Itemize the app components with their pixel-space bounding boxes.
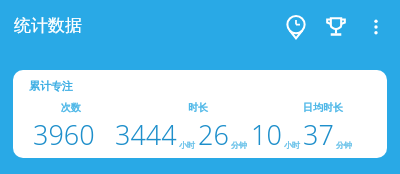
staticText: 3444 <box>115 116 177 153</box>
staticText: 分钟 <box>231 140 247 150</box>
staticText: 10 <box>251 116 282 153</box>
button[interactable]: 累计专注 <box>13 70 387 158</box>
staticText: 分钟 <box>336 140 352 150</box>
staticText: 次数 <box>61 101 81 114</box>
staticText: 时长 <box>188 101 208 114</box>
staticText: 统计数据 <box>14 15 82 36</box>
staticText: 累计专注 <box>29 79 73 93</box>
button[interactable]: More options <box>356 7 396 47</box>
staticText: 小时 <box>179 140 195 150</box>
button[interactable]: Timeline <box>276 7 316 47</box>
staticText: 37 <box>303 116 334 153</box>
staticText: 小时 <box>284 140 300 150</box>
staticText: 26 <box>198 116 229 153</box>
staticText: 3960 <box>33 116 95 153</box>
staticText: 日均时长 <box>303 101 343 114</box>
button[interactable]: Achievements <box>316 7 356 47</box>
